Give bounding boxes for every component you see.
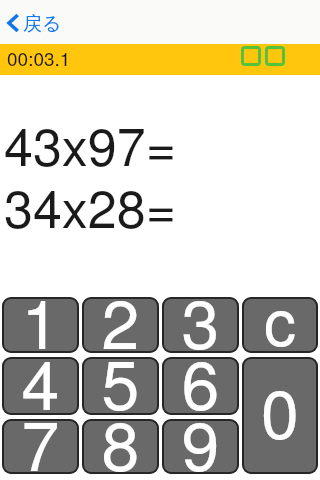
button[interactable]: [2, 419, 79, 474]
staticText: 00:03.1: [7, 44, 71, 71]
button[interactable]: [82, 419, 159, 474]
staticText: 34x28=: [4, 168, 177, 242]
staticText: 0: [242, 361, 318, 458]
button[interactable]: [162, 297, 239, 353]
staticText: 5: [82, 332, 159, 429]
staticText: 1: [2, 271, 79, 368]
staticText: c: [242, 273, 318, 365]
staticText: 4: [2, 332, 79, 429]
button[interactable]: [242, 357, 318, 474]
staticText: 3: [162, 271, 239, 368]
button[interactable]: 戻る: [7, 10, 62, 34]
button[interactable]: [82, 357, 159, 415]
staticText: 7: [2, 393, 79, 480]
button[interactable]: [162, 419, 239, 474]
button[interactable]: [2, 297, 79, 353]
button[interactable]: [162, 357, 239, 415]
staticText: 2: [82, 271, 159, 368]
staticText: 6: [162, 332, 239, 429]
staticText: 43x97=: [4, 106, 177, 180]
button[interactable]: [2, 357, 79, 415]
staticText: 戻る: [23, 12, 62, 36]
button[interactable]: [242, 297, 318, 353]
button[interactable]: [82, 297, 159, 353]
staticText: 9: [162, 393, 239, 480]
staticText: 8: [82, 393, 159, 480]
